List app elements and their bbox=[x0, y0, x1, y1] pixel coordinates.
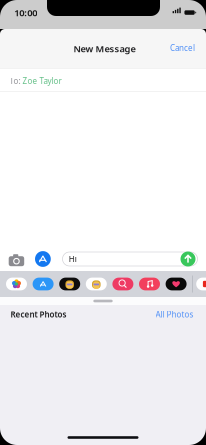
button[interactable]: App Store bbox=[33, 278, 54, 290]
button[interactable]: More bbox=[196, 278, 206, 290]
staticText: Hi bbox=[69, 254, 77, 264]
button[interactable]: Stickers bbox=[86, 278, 107, 290]
button[interactable]: Music bbox=[139, 278, 160, 290]
staticText: To: bbox=[10, 76, 21, 86]
button[interactable]: All Photos bbox=[151, 305, 197, 324]
staticText: Recent Photos bbox=[11, 309, 67, 320]
button[interactable]: Memoji bbox=[59, 278, 80, 290]
button[interactable]: Camera bbox=[9, 253, 24, 265]
staticText: New Message bbox=[73, 42, 135, 55]
button[interactable]: Send bbox=[180, 251, 195, 266]
button[interactable]: Cancel bbox=[165, 37, 200, 58]
button[interactable]: Apps bbox=[35, 251, 51, 267]
button[interactable]: Digital Touch bbox=[166, 278, 187, 290]
button[interactable]: Photos bbox=[6, 278, 27, 290]
button[interactable]: Images bbox=[112, 278, 133, 290]
staticText: Zoe Taylor bbox=[21, 76, 62, 86]
staticText: All Photos bbox=[155, 309, 193, 320]
staticText: Cancel bbox=[170, 42, 195, 53]
staticText: 10:00 bbox=[14, 6, 37, 19]
